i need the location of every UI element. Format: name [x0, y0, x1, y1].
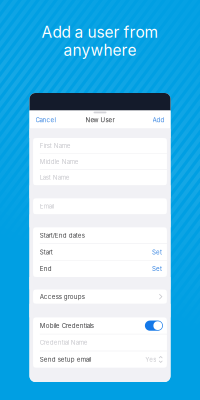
button[interactable]: Middle Name	[33, 154, 167, 169]
staticText: Middle Name	[40, 158, 79, 165]
button[interactable]: End	[33, 261, 167, 277]
staticText: Cancel	[35, 116, 55, 124]
staticText: Add a user from	[41, 23, 158, 41]
staticText: Send setup email	[40, 356, 91, 363]
button[interactable]: First Name	[33, 138, 167, 153]
staticText: Access groups	[40, 293, 85, 300]
staticText: New User	[85, 116, 114, 124]
button[interactable]: Add	[151, 115, 165, 125]
staticText: First Name	[40, 142, 71, 149]
button[interactable]: Access groups	[33, 289, 167, 304]
button[interactable]: Email	[33, 198, 167, 214]
staticText: Set	[152, 265, 162, 272]
staticText: Yes	[145, 356, 156, 363]
button[interactable]: Last Name	[33, 170, 167, 185]
staticText: Set	[152, 248, 162, 256]
button[interactable]: Mobile Credentials	[33, 317, 167, 334]
staticText: Email	[40, 203, 54, 210]
button[interactable]: Credential Name	[33, 334, 167, 351]
button[interactable]: Cancel	[34, 115, 56, 125]
button[interactable]: Start/End dates	[33, 227, 167, 244]
staticText: Add	[152, 116, 164, 124]
staticText: Start/End dates	[40, 232, 85, 239]
staticText: anywhere	[63, 41, 136, 59]
staticText: Last Name	[40, 174, 70, 181]
staticText: Credential Name	[40, 339, 88, 346]
button[interactable]: Send setup email	[33, 351, 167, 368]
staticText: Start	[40, 248, 53, 256]
button[interactable]: Start	[33, 244, 167, 260]
staticText: Mobile Credentials	[40, 322, 94, 329]
staticText: End	[40, 265, 52, 272]
